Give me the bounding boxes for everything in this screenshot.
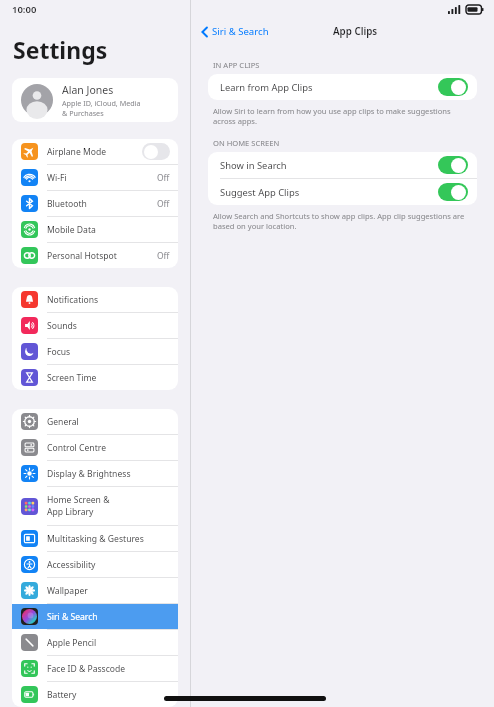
button[interactable]: Alan Jones [12, 78, 178, 122]
button[interactable]: Focus [12, 339, 178, 364]
button[interactable]: Wi-Fi [12, 165, 178, 190]
button[interactable]: Suggest App Clips [208, 179, 477, 205]
staticText: Wallpaper [47, 585, 170, 597]
staticText: App Clips [333, 25, 378, 38]
staticText: Home Screen & [47, 494, 110, 506]
staticText: Battery [47, 689, 170, 701]
staticText: Apple Pencil [47, 637, 170, 649]
button[interactable]: On [438, 78, 468, 96]
staticText: Control Centre [47, 442, 170, 454]
staticText: General [47, 416, 170, 428]
button[interactable]: Wallpaper [12, 578, 178, 603]
button[interactable]: Learn from App Clips [208, 74, 477, 100]
staticText: IN APP CLIPS [213, 60, 260, 70]
button[interactable]: Control Centre [12, 435, 178, 460]
staticText: ON HOME SCREEN [213, 138, 280, 148]
button[interactable]: Accessibility [12, 552, 178, 577]
staticText: Off [157, 198, 170, 209]
staticText: 10:00 [12, 3, 37, 16]
button[interactable]: Screen Time [12, 365, 178, 390]
button[interactable]: Apple Pencil [12, 630, 178, 655]
staticText: Face ID & Passcode [47, 663, 170, 675]
staticText: Off [157, 172, 170, 183]
button[interactable]: Battery [12, 682, 178, 707]
staticText: Learn from App Clips [220, 81, 438, 94]
button[interactable]: Siri & Search [191, 22, 275, 41]
button[interactable]: Face ID & Passcode [12, 656, 178, 681]
staticText: Mobile Data [47, 224, 170, 236]
button[interactable]: On [438, 156, 468, 174]
button[interactable]: Display & Brightness [12, 461, 178, 486]
staticText: Airplane Mode [47, 146, 142, 158]
staticText: Off [157, 250, 170, 261]
button[interactable]: Home Screen & [12, 487, 178, 525]
button[interactable]: Show in Search [208, 152, 477, 178]
staticText: Alan Jones [62, 83, 114, 97]
staticText: Personal Hotspot [47, 250, 157, 262]
button[interactable]: On [438, 183, 468, 201]
staticText: Accessibility [47, 559, 170, 571]
staticText: Siri & Search [47, 611, 170, 623]
button[interactable]: Notifications [12, 287, 178, 312]
staticText: Screen Time [47, 372, 170, 384]
staticText: Focus [47, 346, 170, 358]
staticText: Multitasking & Gestures [47, 533, 170, 545]
button[interactable]: Sounds [12, 313, 178, 338]
button[interactable]: Multitasking & Gestures [12, 526, 178, 551]
button[interactable]: Off [142, 143, 170, 160]
button[interactable]: General [12, 409, 178, 434]
staticText: Settings [13, 34, 108, 65]
staticText: Allow Siri to learn from how you use app… [213, 106, 468, 126]
staticText: & Purchases [62, 108, 104, 118]
button[interactable]: Siri & Search [12, 604, 178, 629]
button[interactable]: Airplane Mode [12, 139, 178, 164]
staticText: Display & Brightness [47, 468, 170, 480]
staticText: Sounds [47, 320, 170, 332]
staticText: Allow Search and Shortcuts to show app c… [213, 211, 468, 231]
button[interactable]: Mobile Data [12, 217, 178, 242]
staticText: Notifications [47, 294, 170, 306]
button[interactable]: Personal Hotspot [12, 243, 178, 268]
staticText: Show in Search [220, 159, 438, 172]
staticText: Apple ID, iCloud, Media [62, 98, 141, 108]
button[interactable]: Bluetooth [12, 191, 178, 216]
staticText: Siri & Search [212, 25, 269, 38]
staticText: Suggest App Clips [220, 186, 438, 199]
staticText: Wi-Fi [47, 172, 157, 184]
staticText: App Library [47, 506, 94, 518]
staticText: Bluetooth [47, 198, 157, 210]
